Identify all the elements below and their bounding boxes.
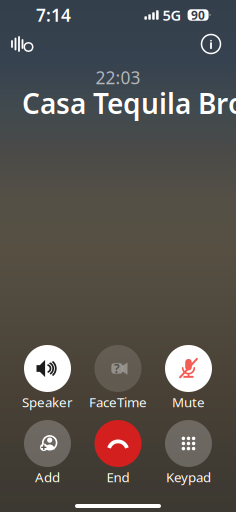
staticText: FaceTime (89, 393, 147, 411)
staticText: 7:14 (36, 3, 71, 26)
staticText: ? (114, 360, 120, 376)
button[interactable]: Speaker (12, 345, 83, 408)
staticText: Mute (172, 393, 205, 411)
staticText: 5G (163, 5, 182, 25)
button[interactable]: Add (12, 420, 83, 483)
staticText: Casa Tequila Broken Arrow (22, 84, 236, 122)
staticText: Keypad (166, 468, 211, 486)
button[interactable]: ? (83, 345, 153, 408)
button[interactable]: Live audio (9, 31, 39, 57)
staticText: Add (35, 468, 60, 486)
button[interactable]: End (83, 420, 153, 483)
button[interactable]: Call details (198, 31, 224, 57)
staticText: 22:03 (95, 66, 140, 89)
staticText: Speaker (22, 393, 73, 411)
staticText: End (106, 468, 129, 486)
button[interactable]: Mute (153, 345, 224, 408)
staticText: 90 (191, 7, 205, 23)
button[interactable]: Keypad (153, 420, 224, 483)
